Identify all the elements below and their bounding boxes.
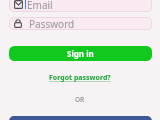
staticText: OR [75, 95, 85, 104]
staticText: Forgot password? [49, 73, 111, 83]
staticText: Password [29, 17, 75, 30]
button[interactable]: Forgot password? [0, 72, 160, 84]
button[interactable]: Password [9, 17, 152, 30]
button[interactable]: Email [9, 0, 152, 12]
staticText: Sign in [67, 48, 94, 59]
button[interactable] [9, 116, 152, 120]
staticText: Email [27, 0, 53, 12]
button[interactable]: Sign in [9, 46, 152, 61]
